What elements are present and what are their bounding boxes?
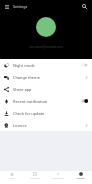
staticText: Home — [8, 177, 15, 180]
button[interactable]: Category — [23, 171, 46, 184]
button[interactable]: Check for update — [0, 107, 92, 119]
staticText: Notification — [51, 177, 64, 180]
button[interactable]: Switch on — [81, 99, 88, 103]
button[interactable]: Switch off — [81, 63, 88, 67]
staticText: Settings — [13, 4, 28, 9]
button[interactable]: Search — [80, 2, 89, 11]
staticText: Licence — [13, 123, 27, 128]
button[interactable]: Night mode — [0, 59, 92, 71]
button[interactable]: Share app — [0, 83, 92, 95]
button[interactable]: Licence — [0, 119, 92, 131]
staticText: Settings — [76, 177, 85, 180]
button[interactable]: Notification — [46, 171, 69, 184]
staticText: username@example.com — [29, 45, 63, 49]
button[interactable]: Menu — [2, 2, 11, 11]
staticText: Share app — [13, 87, 32, 92]
button[interactable]: Change theme — [0, 71, 92, 83]
button[interactable]: Profile photo — [36, 17, 56, 37]
staticText: Night mode — [13, 63, 35, 68]
button[interactable]: Recent notification — [0, 95, 92, 107]
staticText: Check for update — [13, 111, 45, 116]
staticText: Change theme — [13, 75, 40, 80]
button[interactable]: Home — [0, 171, 23, 184]
button[interactable]: Settings — [69, 171, 92, 184]
staticText: Category — [30, 177, 40, 180]
staticText: Recent notification — [13, 99, 48, 104]
